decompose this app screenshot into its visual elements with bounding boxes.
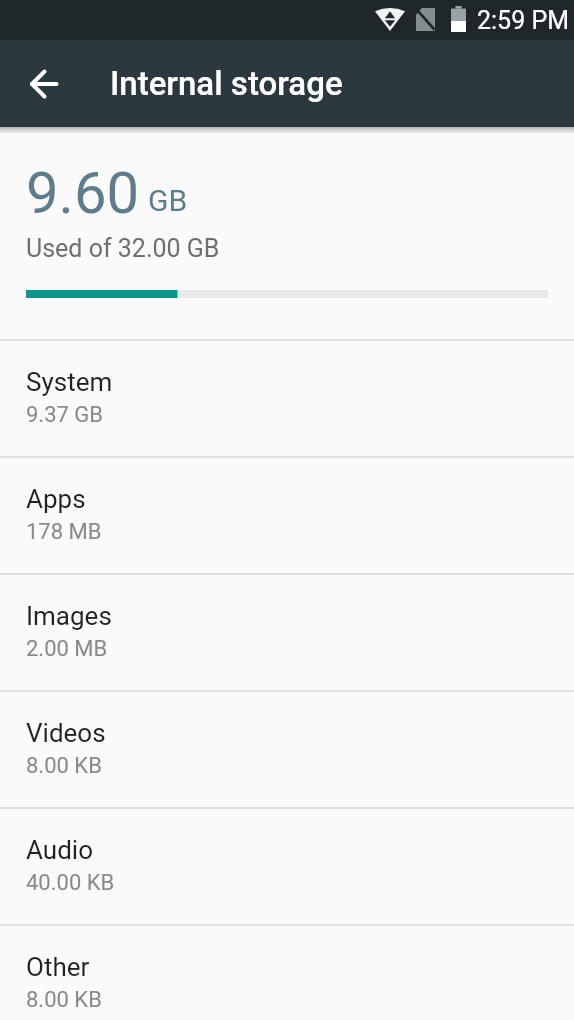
staticText: 8.00 KB xyxy=(26,987,102,1013)
button[interactable] xyxy=(16,56,72,112)
button[interactable]: System xyxy=(0,341,574,456)
button[interactable]: Videos xyxy=(0,692,574,807)
staticText: Used of 32.00 GB xyxy=(26,234,220,263)
button[interactable]: Other xyxy=(0,926,574,1020)
staticText: Videos xyxy=(26,718,106,748)
button[interactable]: Apps xyxy=(0,458,574,573)
staticText: 2:59 PM xyxy=(477,6,570,35)
staticText: GB xyxy=(148,183,188,218)
staticText: Apps xyxy=(26,484,86,514)
staticText: 9.60 xyxy=(26,159,140,227)
staticText: 8.00 KB xyxy=(26,753,102,779)
staticText: Internal storage xyxy=(110,64,343,103)
staticText: System xyxy=(26,367,113,397)
staticText: Audio xyxy=(26,835,93,865)
staticText: 9.37 GB xyxy=(26,402,104,428)
staticText: Images xyxy=(26,601,112,631)
staticText: 40.00 KB xyxy=(26,870,115,896)
staticText: 178 MB xyxy=(26,519,102,545)
button[interactable]: Images xyxy=(0,575,574,690)
staticText: 2.00 MB xyxy=(26,636,108,662)
staticText: Other xyxy=(26,952,90,982)
button[interactable]: Audio xyxy=(0,809,574,924)
